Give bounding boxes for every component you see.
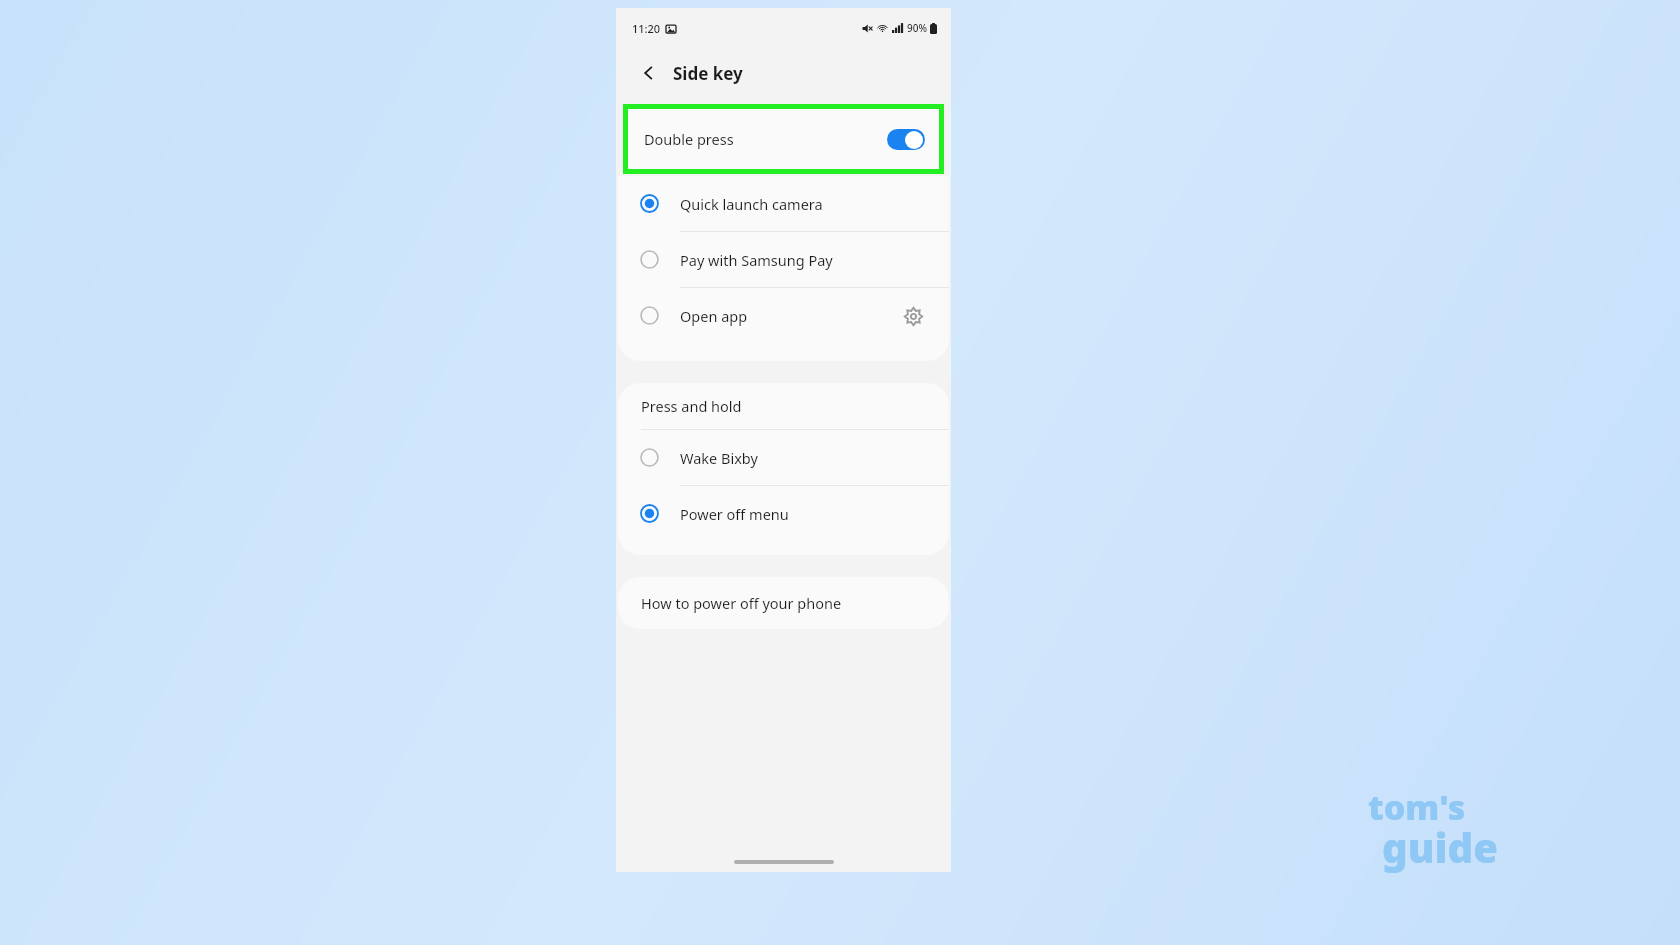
staticText: Double press <box>644 129 734 149</box>
button[interactable]: Double press toggle <box>887 129 925 150</box>
button[interactable]: Open app settings <box>899 302 927 330</box>
button[interactable]: Wake Bixby <box>618 430 949 486</box>
button[interactable]: Back <box>634 58 664 88</box>
button[interactable]: Pay with Samsung Pay <box>618 232 949 288</box>
button[interactable]: How to power off your phone <box>618 577 949 629</box>
button[interactable]: Power off menu <box>618 486 949 541</box>
button[interactable]: Open app <box>618 288 949 343</box>
button[interactable]: Quick launch camera <box>618 176 949 232</box>
staticText: Pay with Samsung Pay <box>680 250 833 270</box>
staticText: guide <box>1382 820 1498 874</box>
staticText: Quick launch camera <box>680 194 823 214</box>
staticText: 11:20 <box>632 21 661 36</box>
staticText: tom's <box>1368 784 1466 830</box>
staticText: Side key <box>673 62 743 85</box>
staticText: Power off menu <box>680 504 789 524</box>
button[interactable]: Double press <box>628 109 939 169</box>
staticText: Wake Bixby <box>680 448 758 468</box>
staticText: Press and hold <box>641 396 742 416</box>
staticText: How to power off your phone <box>641 593 842 613</box>
staticText: 90% <box>907 21 927 35</box>
staticText: Open app <box>680 306 748 326</box>
